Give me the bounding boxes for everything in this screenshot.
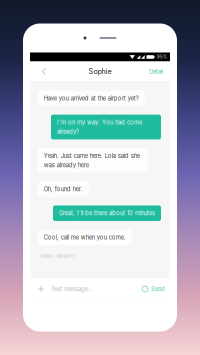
button[interactable]: Back — [34, 61, 54, 81]
staticText: Detail — [149, 68, 163, 75]
staticText: Sophie — [88, 67, 111, 76]
button[interactable]: Add attachment — [33, 278, 49, 300]
staticText: Send — [151, 285, 165, 293]
staticText: Text message... — [51, 285, 94, 293]
staticText: Great, I'll be there about 10 minutes — [59, 210, 155, 217]
staticText: 95% — [157, 54, 167, 60]
staticText: Cool, call me when you come. — [44, 234, 126, 241]
staticText: Oh, found her. — [44, 186, 83, 193]
staticText: Yeah. Just came here. Lola said she was … — [44, 152, 140, 169]
staticText: 08:06 - 18/12/2017 — [41, 254, 75, 258]
button[interactable]: Detail — [146, 61, 166, 81]
button[interactable]: Emoji — [139, 278, 151, 300]
button[interactable]: Send — [151, 278, 165, 300]
staticText: Have you arrived at the airport yet? — [44, 95, 139, 102]
staticText: I'm on my way. You had come already? — [57, 119, 142, 135]
